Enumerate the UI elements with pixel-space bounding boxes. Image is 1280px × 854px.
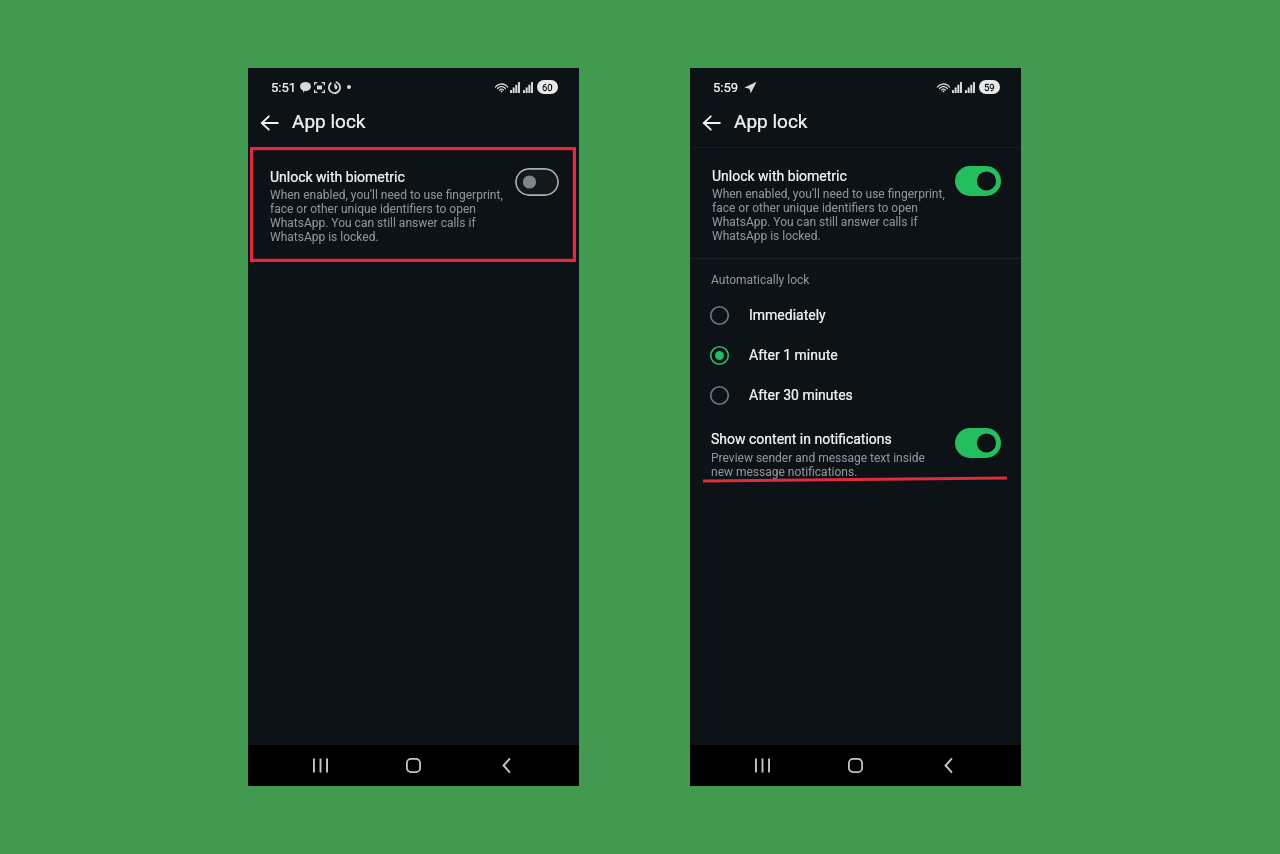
button[interactable]: Immediately <box>690 295 1021 335</box>
button[interactable]: Back <box>932 745 965 786</box>
staticText: 59 <box>984 82 995 93</box>
staticText: Preview sender and message text inside n… <box>711 451 925 479</box>
staticText: App lock <box>734 110 808 132</box>
button[interactable]: After 1 minute <box>690 335 1021 375</box>
staticText: Automatically lock <box>711 273 810 287</box>
staticText: Immediately <box>749 307 826 323</box>
staticText: When enabled, you'll need to use fingerp… <box>712 187 945 243</box>
button[interactable]: Back <box>247 101 291 145</box>
staticText: Unlock with biometric <box>270 169 405 185</box>
button[interactable]: Home <box>839 745 872 786</box>
staticText: 60 <box>542 82 553 93</box>
staticText: 5:59 <box>713 80 739 95</box>
button[interactable]: Show content in notifications <box>690 415 1021 483</box>
button[interactable]: Unlock with biometric <box>690 149 1021 255</box>
staticText: When enabled, you'll need to use fingerp… <box>270 188 503 244</box>
staticText: After 30 minutes <box>749 387 853 403</box>
staticText: 5:51 <box>271 80 297 95</box>
button[interactable]: Home <box>397 745 430 786</box>
button[interactable]: Unlock with biometric <box>248 150 579 256</box>
button[interactable]: Back <box>689 101 733 145</box>
button[interactable]: Recent apps <box>746 745 779 786</box>
button[interactable]: Show content in notifications toggle <box>955 428 1001 458</box>
button[interactable]: Back <box>490 745 523 786</box>
button[interactable]: After 30 minutes <box>690 375 1021 415</box>
staticText: After 1 minute <box>749 347 838 363</box>
button[interactable]: Recent apps <box>304 745 337 786</box>
staticText: Show content in notifications <box>711 431 892 447</box>
staticText: App lock <box>292 110 366 132</box>
button[interactable]: Unlock with biometric toggle <box>955 166 1001 196</box>
staticText: Unlock with biometric <box>712 168 847 184</box>
button[interactable]: Unlock with biometric toggle <box>515 168 559 196</box>
